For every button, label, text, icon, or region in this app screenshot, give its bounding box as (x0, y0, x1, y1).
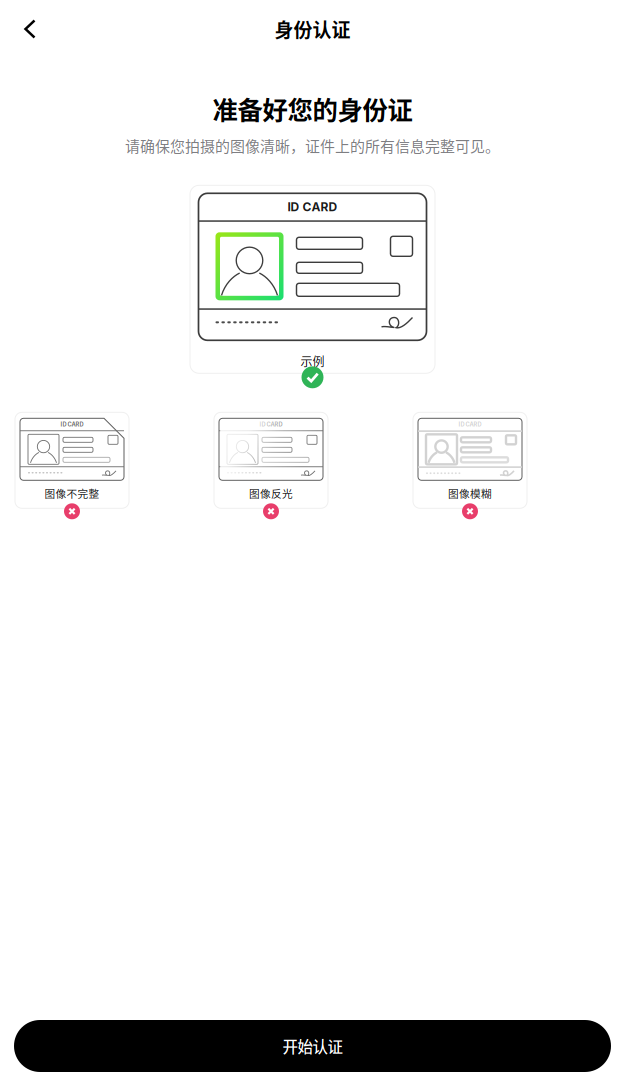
staticText: 示例 (300, 352, 324, 370)
staticText: ID CARD (60, 421, 83, 428)
staticText: ID CARD (259, 421, 282, 428)
staticText: 请确保您拍摄的图像清晰，证件上的所有信息完整可见。 (125, 135, 500, 156)
staticText: 图像模糊 (448, 485, 492, 501)
staticText: 图像反光 (249, 485, 293, 501)
staticText: 开始认证 (282, 1035, 342, 1057)
staticText: 准备好您的身份证 (212, 90, 412, 127)
staticText: ID CARD (458, 421, 481, 428)
button[interactable]: Back (0, 4, 58, 54)
staticText: 图像不完整 (44, 485, 99, 501)
button[interactable]: 开始认证 (14, 1020, 611, 1072)
staticText: 身份认证 (274, 15, 350, 43)
staticText: ID CARD (287, 199, 337, 214)
